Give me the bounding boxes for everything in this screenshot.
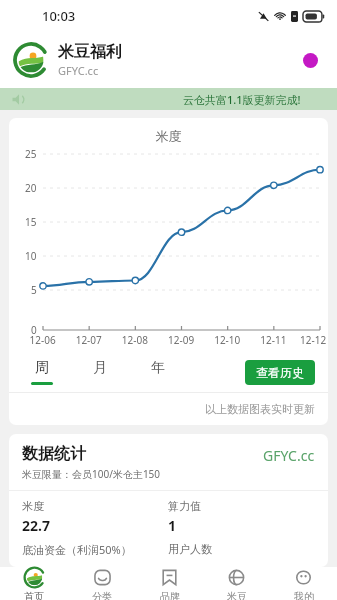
button[interactable]: 云仓共富1.1版更新完成! xyxy=(0,88,337,110)
staticText: 以上数据图表实时更新 xyxy=(9,402,315,416)
staticText: 首页 xyxy=(24,590,44,600)
staticText: 分类 xyxy=(92,590,112,600)
staticText: 云仓共富1.1版更新完成! xyxy=(183,92,301,107)
staticText: 底油资金（利润50%） xyxy=(22,542,168,557)
staticText: 22.7 xyxy=(22,516,50,535)
staticText: 1 xyxy=(168,516,177,535)
staticText: 米豆 xyxy=(227,590,247,600)
button[interactable]: 米豆 xyxy=(203,567,270,600)
staticText: 米豆福利 xyxy=(58,42,122,62)
button[interactable]: 月 xyxy=(71,352,129,392)
button[interactable]: 首页 xyxy=(0,567,68,600)
staticText: 米豆限量：会员100/米仓主150 xyxy=(22,467,161,481)
button[interactable]: 分类 xyxy=(68,567,136,600)
button[interactable]: 查看历史 xyxy=(245,360,315,385)
staticText: 米度 xyxy=(9,128,328,144)
staticText: 月 xyxy=(93,359,107,377)
button[interactable]: 年 xyxy=(129,352,187,392)
staticText: 算力值 xyxy=(168,499,201,513)
button[interactable]: Notifications xyxy=(297,47,323,73)
button[interactable]: 品牌 xyxy=(136,567,203,600)
staticText: GFYC.cc xyxy=(263,446,315,465)
staticText: 数据统计 xyxy=(22,444,86,464)
staticText: 用户人数 xyxy=(168,542,315,556)
staticText: 品牌 xyxy=(160,590,180,600)
staticText: 米度 xyxy=(22,499,44,513)
staticText: GFYC.cc xyxy=(58,63,99,78)
staticText: 年 xyxy=(151,359,165,377)
staticText: 10:03 xyxy=(42,7,76,25)
button[interactable]: 我的 xyxy=(270,567,337,600)
staticText: 查看历史 xyxy=(256,365,304,380)
staticText: 我的 xyxy=(294,590,314,600)
button[interactable]: 周 xyxy=(13,352,71,392)
staticText: 周 xyxy=(35,359,49,377)
